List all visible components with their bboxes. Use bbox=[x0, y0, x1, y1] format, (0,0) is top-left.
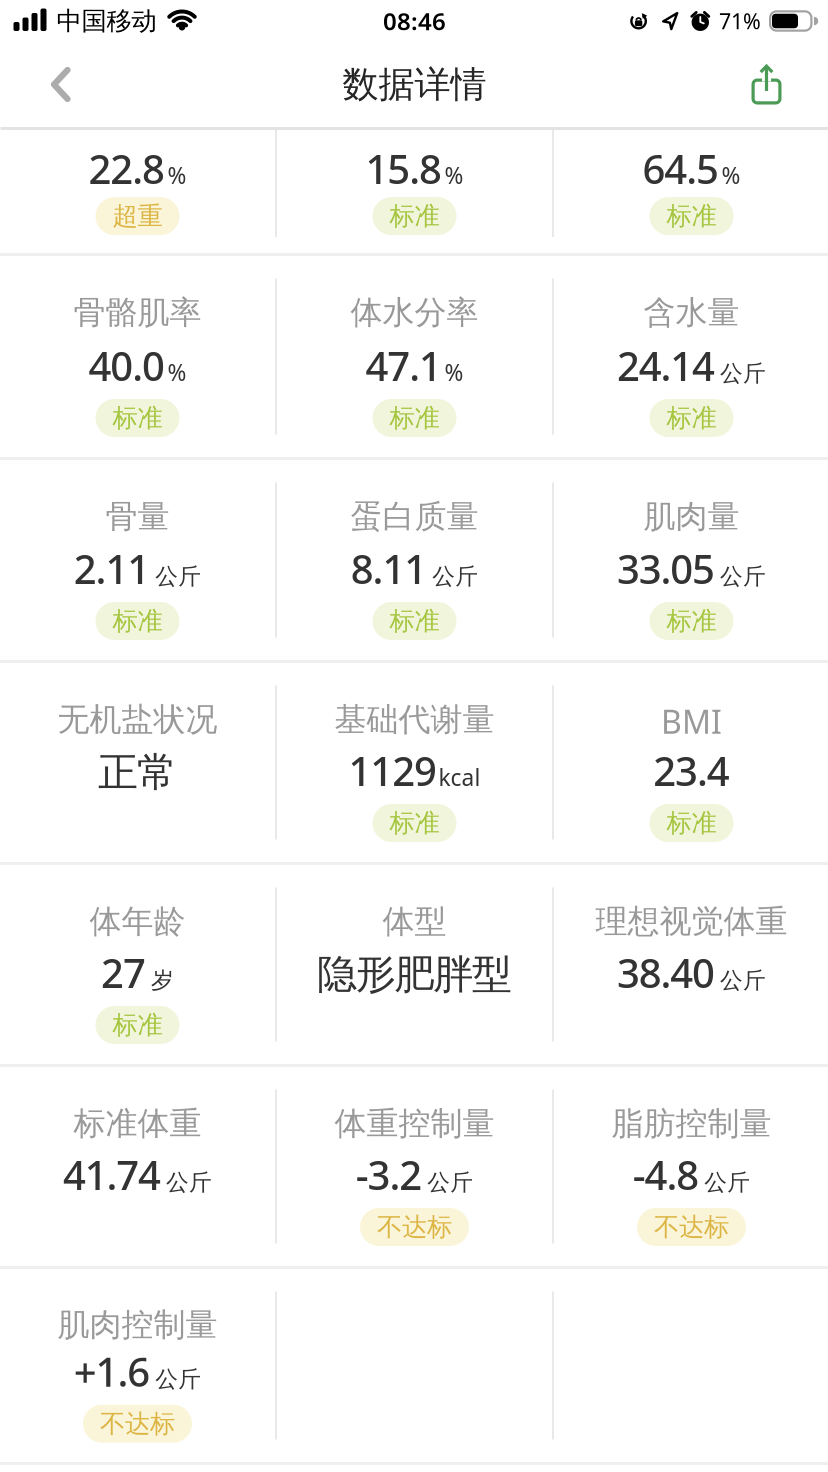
button[interactable]: Back bbox=[32, 47, 88, 121]
staticText: 标准 bbox=[389, 201, 439, 232]
staticText: 肌肉量 bbox=[643, 497, 739, 536]
staticText: -3.2 bbox=[356, 1148, 422, 1201]
staticText: 标准 bbox=[666, 201, 716, 232]
staticText: 公斤 bbox=[427, 1168, 473, 1196]
staticText: 无机盐状况 bbox=[57, 700, 217, 739]
staticText: 15.8 bbox=[366, 142, 442, 195]
staticText: % bbox=[721, 160, 740, 190]
staticText: 脂肪控制量 bbox=[611, 1104, 771, 1143]
staticText: 数据详情 bbox=[342, 62, 486, 107]
staticText: 8.11 bbox=[351, 542, 427, 595]
staticText: 2.11 bbox=[74, 542, 150, 595]
staticText: 公斤 bbox=[720, 562, 766, 590]
staticText: 公斤 bbox=[155, 562, 201, 590]
staticText: 22.8 bbox=[89, 142, 165, 195]
staticText: % bbox=[444, 357, 463, 387]
staticText: 标准体重 bbox=[73, 1104, 201, 1143]
staticText: 不达标 bbox=[654, 1211, 729, 1242]
staticText: 标准 bbox=[389, 605, 439, 636]
staticText: 体型 bbox=[382, 902, 446, 941]
staticText: 体年龄 bbox=[89, 902, 185, 941]
staticText: 71% bbox=[719, 7, 761, 35]
staticText: 24.14 bbox=[617, 339, 715, 392]
staticText: 理想视觉体重 bbox=[595, 902, 787, 941]
staticText: 标准 bbox=[112, 402, 162, 433]
staticText: 不达标 bbox=[377, 1211, 452, 1242]
staticText: 33.05 bbox=[617, 542, 715, 595]
staticText: BMI bbox=[661, 700, 722, 742]
staticText: 标准 bbox=[389, 402, 439, 433]
staticText: 40.0 bbox=[89, 339, 165, 392]
staticText: 体重控制量 bbox=[334, 1104, 494, 1143]
staticText: 公斤 bbox=[704, 1168, 750, 1196]
staticText: 肌肉控制量 bbox=[57, 1305, 217, 1345]
staticText: 64.5 bbox=[643, 142, 719, 195]
staticText: 中国移动 bbox=[56, 5, 156, 36]
staticText: 不达标 bbox=[100, 1408, 175, 1439]
staticText: % bbox=[167, 160, 186, 190]
staticText: +1.6 bbox=[74, 1345, 150, 1398]
staticText: 公斤 bbox=[432, 562, 478, 590]
button[interactable]: Share bbox=[734, 47, 798, 121]
staticText: 基础代谢量 bbox=[334, 700, 494, 739]
staticText: 体水分率 bbox=[350, 293, 478, 332]
staticText: 公斤 bbox=[166, 1168, 212, 1196]
staticText: 27 bbox=[101, 946, 146, 999]
staticText: kcal bbox=[438, 762, 480, 792]
staticText: 08:46 bbox=[383, 5, 446, 37]
staticText: 标准 bbox=[666, 807, 716, 838]
staticText: 1129 bbox=[349, 744, 437, 797]
staticText: 标准 bbox=[112, 605, 162, 636]
staticText: 公斤 bbox=[155, 1365, 201, 1393]
staticText: 超重 bbox=[112, 201, 162, 232]
staticText: 骨骼肌率 bbox=[73, 293, 201, 332]
staticText: 标准 bbox=[666, 605, 716, 636]
staticText: 标准 bbox=[112, 1009, 162, 1040]
staticText: 标准 bbox=[666, 402, 716, 433]
staticText: 公斤 bbox=[720, 359, 766, 387]
staticText: 含水量 bbox=[643, 293, 739, 332]
staticText: 骨量 bbox=[105, 497, 169, 536]
staticText: 公斤 bbox=[720, 966, 766, 994]
staticText: -4.8 bbox=[633, 1148, 699, 1201]
staticText: 23.4 bbox=[653, 744, 730, 797]
staticText: % bbox=[444, 160, 463, 190]
staticText: 47.1 bbox=[366, 339, 442, 392]
staticText: 41.74 bbox=[63, 1148, 161, 1201]
staticText: 隐形肥胖型 bbox=[317, 950, 512, 999]
staticText: 正常 bbox=[98, 748, 177, 797]
staticText: % bbox=[167, 357, 186, 387]
staticText: 38.40 bbox=[617, 946, 715, 999]
staticText: 标准 bbox=[389, 807, 439, 838]
staticText: 岁 bbox=[151, 966, 174, 994]
staticText: 蛋白质量 bbox=[350, 497, 478, 536]
